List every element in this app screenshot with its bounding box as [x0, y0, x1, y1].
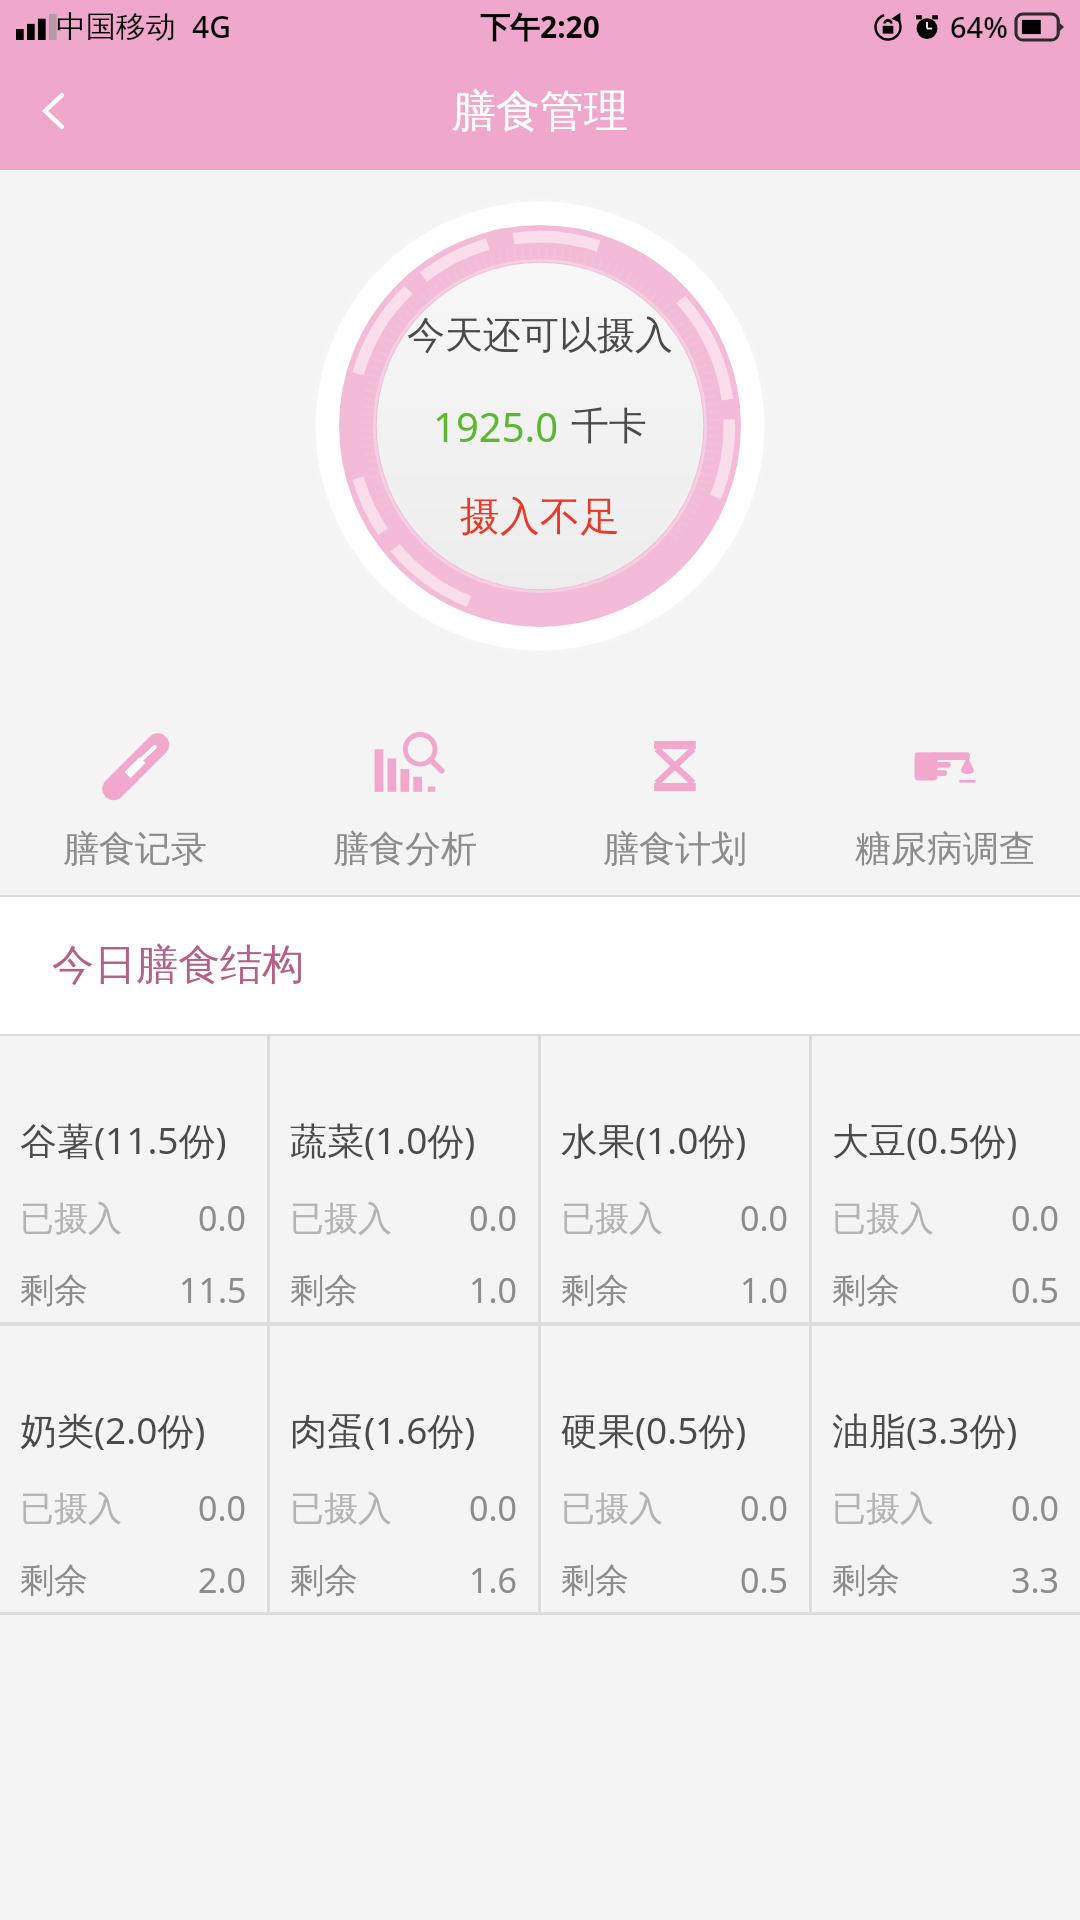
- staticText: 0.0: [198, 1195, 247, 1241]
- staticText: 0.0: [198, 1485, 247, 1531]
- staticText: 谷薯(11.5份): [20, 1114, 227, 1165]
- staticText: 膳食管理: [452, 84, 628, 139]
- button[interactable]: 油脂(3.3份): [812, 1326, 1080, 1612]
- staticText: 膳食记录: [63, 826, 207, 871]
- staticText: 剩余: [290, 1269, 358, 1312]
- staticText: 0.0: [740, 1485, 789, 1531]
- staticText: 硬果(0.5份): [561, 1404, 747, 1455]
- staticText: 0.0: [469, 1485, 518, 1531]
- staticText: 4G: [192, 6, 231, 47]
- staticText: 0.0: [1011, 1485, 1060, 1531]
- staticText: 已摄入: [20, 1487, 122, 1530]
- staticText: 剩余: [832, 1559, 900, 1602]
- staticText: 中国移动: [56, 8, 176, 46]
- staticText: 0.0: [469, 1195, 518, 1241]
- staticText: 0.0: [740, 1195, 789, 1241]
- staticText: 千卡: [571, 402, 647, 450]
- staticText: 剩余: [561, 1559, 629, 1602]
- staticText: 0.5: [740, 1557, 789, 1603]
- staticText: 剩余: [20, 1559, 88, 1602]
- staticText: 今日膳食结构: [52, 939, 304, 992]
- button[interactable]: 肉蛋(1.6份): [270, 1326, 538, 1612]
- staticText: 已摄入: [832, 1197, 934, 1240]
- staticText: 剩余: [20, 1269, 88, 1312]
- button[interactable]: 蔬菜(1.0份): [270, 1036, 538, 1322]
- staticText: 剩余: [832, 1269, 900, 1312]
- staticText: 膳食计划: [603, 826, 747, 871]
- button[interactable]: 糖尿病调查: [810, 710, 1080, 895]
- staticText: 1925.0: [433, 399, 559, 453]
- staticText: 已摄入: [20, 1197, 122, 1240]
- staticText: 已摄入: [290, 1197, 392, 1240]
- staticText: 1.0: [469, 1267, 518, 1313]
- staticText: 已摄入: [290, 1487, 392, 1530]
- staticText: 剩余: [561, 1269, 629, 1312]
- staticText: 肉蛋(1.6份): [290, 1404, 476, 1455]
- staticText: 剩余: [290, 1559, 358, 1602]
- staticText: 1.6: [469, 1557, 518, 1603]
- staticText: 今天还可以摄入: [407, 311, 673, 359]
- staticText: 水果(1.0份): [561, 1114, 747, 1165]
- button[interactable]: 奶类(2.0份): [0, 1326, 267, 1612]
- staticText: 膳食分析: [333, 826, 477, 871]
- button[interactable]: 硬果(0.5份): [541, 1326, 809, 1612]
- staticText: 大豆(0.5份): [832, 1114, 1018, 1165]
- staticText: 2.0: [198, 1557, 247, 1603]
- staticText: 已摄入: [561, 1487, 663, 1530]
- staticText: 64%: [950, 7, 1008, 46]
- staticText: 油脂(3.3份): [832, 1404, 1018, 1455]
- button[interactable]: 膳食计划: [540, 710, 810, 895]
- staticText: 蔬菜(1.0份): [290, 1114, 476, 1165]
- button[interactable]: 膳食分析: [270, 710, 540, 895]
- staticText: 3.3: [1011, 1557, 1060, 1603]
- staticText: 0.5: [1011, 1267, 1060, 1313]
- staticText: 已摄入: [832, 1487, 934, 1530]
- staticText: 11.5: [179, 1267, 247, 1313]
- button[interactable]: Back: [0, 57, 108, 165]
- button[interactable]: 谷薯(11.5份): [0, 1036, 267, 1322]
- staticText: 下午2:20: [480, 6, 600, 47]
- staticText: 已摄入: [561, 1197, 663, 1240]
- staticText: 0.0: [1011, 1195, 1060, 1241]
- button[interactable]: 大豆(0.5份): [812, 1036, 1080, 1322]
- button[interactable]: 膳食记录: [0, 710, 270, 895]
- staticText: 奶类(2.0份): [20, 1404, 206, 1455]
- staticText: 摄入不足: [460, 491, 620, 541]
- staticText: 1.0: [740, 1267, 789, 1313]
- button[interactable]: 水果(1.0份): [541, 1036, 809, 1322]
- staticText: 糖尿病调查: [855, 826, 1035, 871]
